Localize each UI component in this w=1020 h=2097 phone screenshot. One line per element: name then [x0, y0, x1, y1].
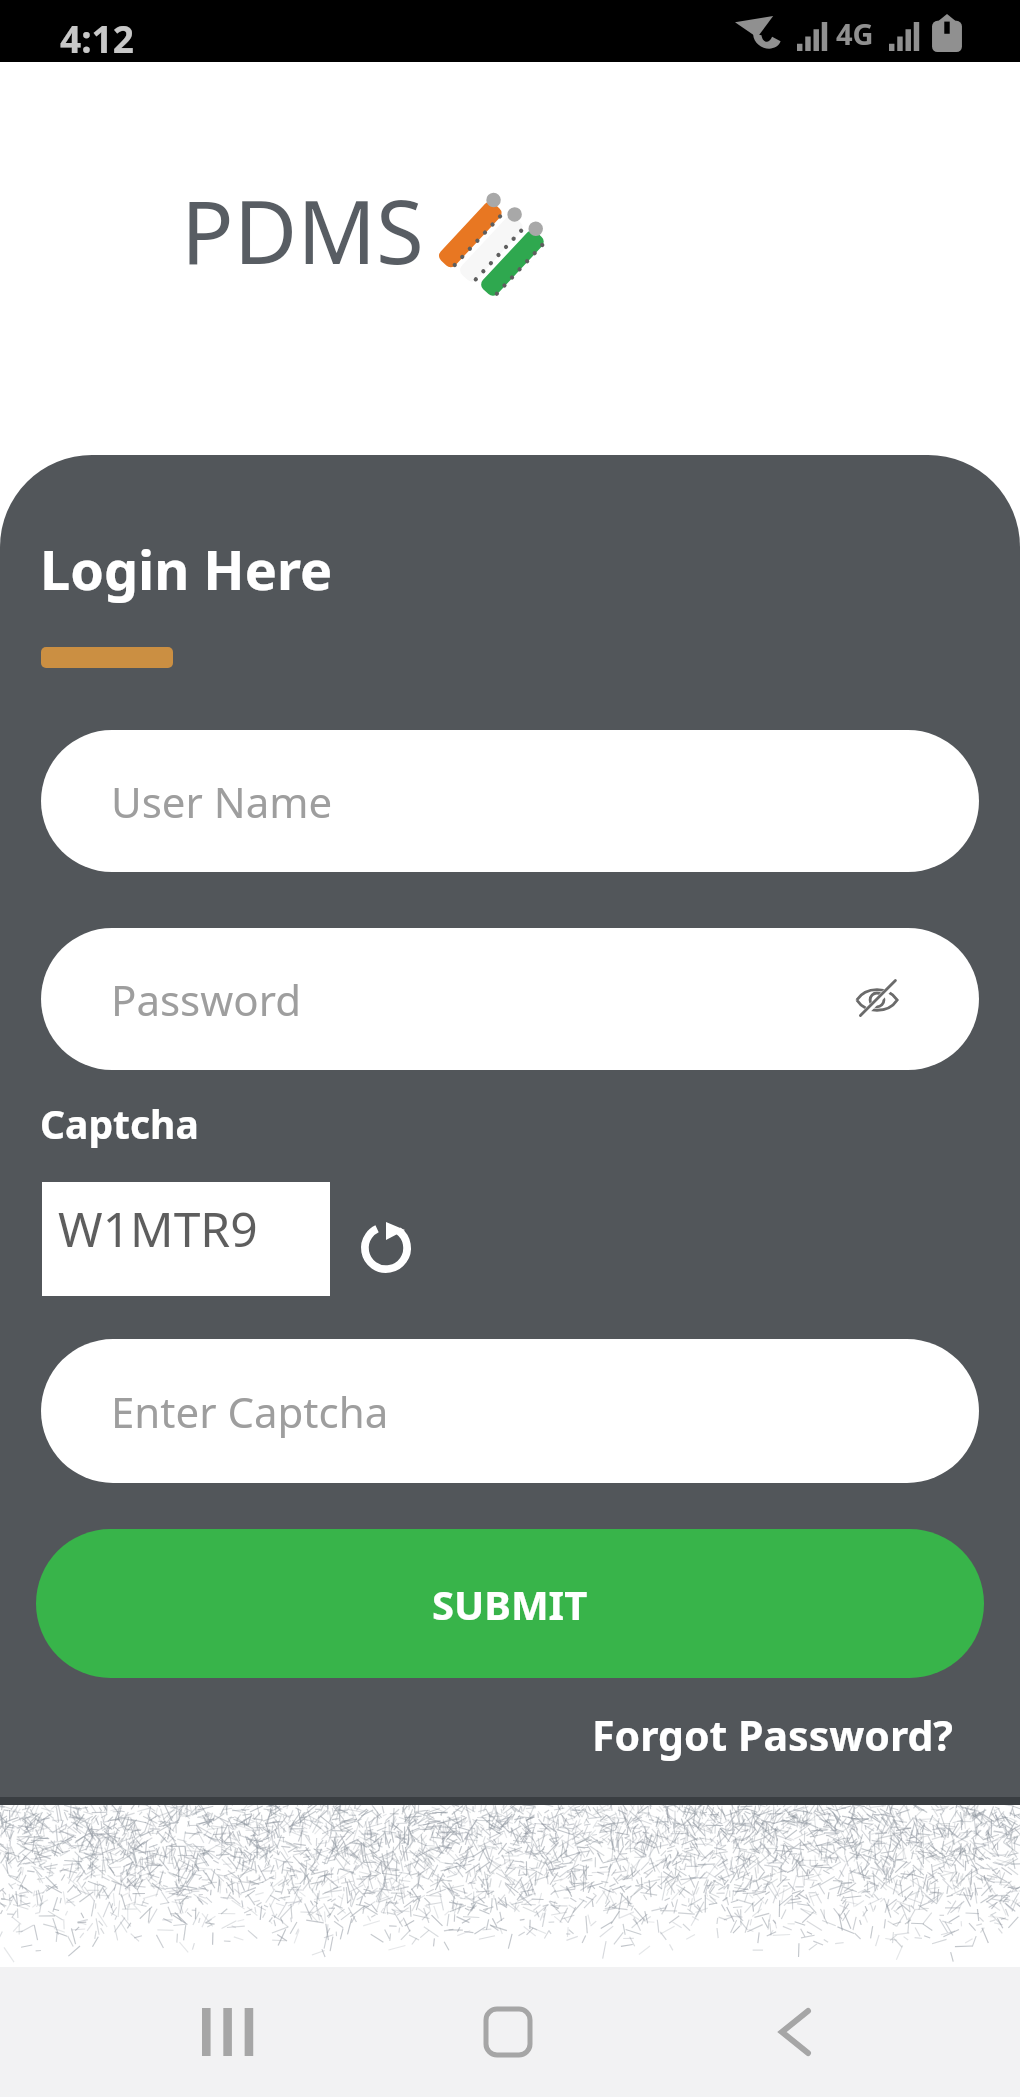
button[interactable]: Home — [468, 1992, 548, 2072]
staticText: SUBMIT — [432, 1577, 588, 1631]
button[interactable]: Back — [755, 1992, 835, 2072]
staticText: 4:12 — [60, 13, 134, 63]
staticText: Enter Captcha — [111, 1383, 389, 1440]
button[interactable]: Enter Captcha — [41, 1339, 979, 1483]
staticText: User Name — [111, 773, 333, 830]
staticText: W1MTR9 — [58, 1196, 258, 1261]
staticText: PDMS — [181, 171, 424, 289]
staticText: Login Here — [40, 532, 333, 606]
button[interactable]: Refresh captcha — [358, 1220, 414, 1276]
button[interactable]: Password — [41, 928, 979, 1070]
button[interactable]: User Name — [41, 730, 979, 872]
button[interactable]: SUBMIT — [36, 1529, 984, 1678]
staticText: Captcha — [40, 1097, 199, 1150]
staticText: 4G — [836, 14, 874, 53]
button[interactable]: Recents — [188, 1992, 268, 2072]
button[interactable]: Forgot Password? — [588, 1703, 957, 1767]
staticText: Password — [111, 971, 301, 1028]
staticText: Forgot Password? — [592, 1707, 953, 1763]
button[interactable]: Toggle password visibility — [849, 971, 905, 1027]
